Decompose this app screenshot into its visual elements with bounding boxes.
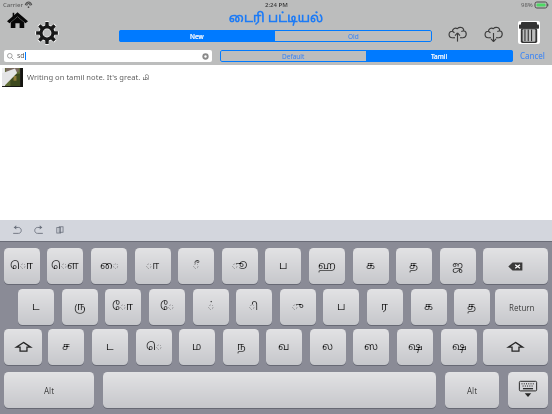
- button[interactable]: ஹ: [309, 248, 345, 284]
- staticText: Return: [509, 302, 535, 313]
- staticText: ு: [292, 300, 304, 314]
- staticText: ச: [62, 340, 70, 354]
- button[interactable]: Tamil: [366, 50, 513, 62]
- staticText: க: [366, 259, 376, 273]
- button[interactable]: Cancel: [515, 48, 550, 63]
- button[interactable]: ப: [265, 248, 301, 284]
- button[interactable]: ்: [193, 289, 229, 325]
- button[interactable]: Redo: [30, 222, 46, 238]
- staticText: ம: [192, 340, 202, 354]
- staticText: ி: [249, 300, 259, 314]
- staticText: ட: [32, 300, 40, 314]
- button[interactable]: Copy: [52, 222, 68, 238]
- button[interactable]: ை: [91, 248, 127, 284]
- button[interactable]: ோ: [105, 289, 141, 325]
- staticText: ஷ: [408, 340, 423, 354]
- button[interactable]: Shift: [483, 329, 548, 365]
- button[interactable]: Backspace: [483, 248, 548, 284]
- button[interactable]: ௌ: [47, 248, 83, 284]
- staticText: ை: [100, 259, 119, 273]
- staticText: ஜ: [452, 259, 464, 273]
- button[interactable]: sd: [4, 50, 212, 62]
- button[interactable]: ப: [323, 289, 359, 325]
- staticText: 98%: [521, 1, 533, 9]
- button[interactable]: ட: [92, 329, 128, 365]
- button[interactable]: ரு: [62, 289, 98, 325]
- button[interactable]: த: [396, 248, 432, 284]
- staticText: ப: [337, 300, 346, 314]
- staticText: ்: [208, 300, 215, 314]
- staticText: ே: [160, 300, 175, 314]
- button[interactable]: Undo: [9, 222, 25, 238]
- staticText: Tamil: [431, 52, 448, 61]
- button[interactable]: Shift: [4, 329, 42, 365]
- staticText: ௌ: [51, 259, 79, 273]
- button[interactable]: க: [411, 289, 447, 325]
- staticText: டைரி பட்டியல்: [0, 11, 552, 27]
- staticText: ப: [279, 259, 288, 273]
- button[interactable]: Alt: [4, 372, 94, 408]
- button[interactable]: ே: [149, 289, 185, 325]
- button[interactable]: ட: [18, 289, 54, 325]
- staticText: ொ: [10, 259, 34, 273]
- button[interactable]: Default: [220, 50, 366, 62]
- button[interactable]: New: [119, 30, 275, 42]
- staticText: ா: [146, 259, 160, 273]
- button[interactable]: ச: [48, 329, 84, 365]
- button[interactable]: த: [454, 289, 490, 325]
- staticText: ீ: [193, 259, 200, 273]
- staticText: த: [409, 259, 419, 273]
- staticText: 2:24 PM: [265, 1, 288, 9]
- staticText: வ: [278, 340, 290, 354]
- button[interactable]: Hide keyboard: [508, 372, 548, 408]
- staticText: ெ: [146, 340, 163, 354]
- button[interactable]: Upload to cloud: [443, 19, 472, 45]
- staticText: த: [467, 300, 477, 314]
- button[interactable]: ம: [179, 329, 215, 365]
- button[interactable]: ஷ: [441, 329, 477, 365]
- button[interactable]: வ: [266, 329, 302, 365]
- button[interactable]: ெ: [136, 329, 172, 365]
- button[interactable]: Download from cloud: [478, 19, 507, 45]
- staticText: sd: [17, 51, 25, 61]
- staticText: ட: [106, 340, 114, 354]
- staticText: ஸ: [364, 340, 379, 354]
- staticText: ல: [322, 340, 334, 354]
- button[interactable]: Old: [275, 30, 432, 42]
- button[interactable]: Settings: [34, 20, 60, 46]
- staticText: Alt: [44, 385, 55, 396]
- button[interactable]: Delete: [514, 19, 543, 45]
- staticText: ஹ: [318, 259, 336, 273]
- button[interactable]: ூ: [222, 248, 258, 284]
- staticText: ஷ: [452, 340, 467, 354]
- button[interactable]: Home: [4, 10, 30, 30]
- button[interactable]: ி: [236, 289, 272, 325]
- button[interactable]: ீ: [178, 248, 214, 284]
- button[interactable]: ஷ: [397, 329, 433, 365]
- button[interactable]: Writing on tamil note. It's great. மி: [0, 65, 552, 89]
- button[interactable]: Alt: [445, 372, 499, 408]
- button[interactable]: ர: [367, 289, 403, 325]
- staticText: Cancel: [520, 50, 545, 61]
- staticText: New: [190, 32, 204, 41]
- button[interactable]: க: [353, 248, 389, 284]
- staticText: Alt: [467, 385, 478, 396]
- staticText: Old: [348, 32, 359, 41]
- staticText: ந: [237, 340, 246, 354]
- staticText: ரு: [74, 300, 86, 314]
- staticText: Carrier: [3, 1, 23, 9]
- staticText: ோ: [112, 300, 134, 314]
- button[interactable]: ல: [310, 329, 346, 365]
- staticText: ூ: [232, 259, 248, 273]
- staticText: Default: [282, 52, 305, 61]
- button[interactable]: ு: [280, 289, 316, 325]
- button[interactable]: ா: [135, 248, 171, 284]
- button[interactable]: Return: [495, 289, 548, 325]
- button[interactable]: ஜ: [440, 248, 476, 284]
- button[interactable]: ொ: [4, 248, 40, 284]
- button[interactable]: ந: [223, 329, 259, 365]
- button[interactable]: Space: [103, 372, 436, 408]
- button[interactable]: ஸ: [353, 329, 389, 365]
- staticText: ர: [381, 300, 389, 314]
- staticText: க: [424, 300, 434, 314]
